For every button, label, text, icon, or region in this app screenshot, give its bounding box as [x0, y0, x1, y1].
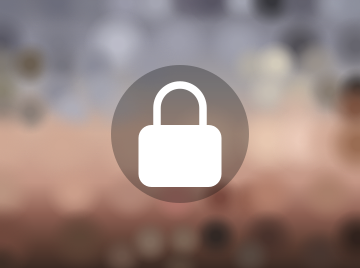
button[interactable]: Locked content [111, 65, 249, 203]
